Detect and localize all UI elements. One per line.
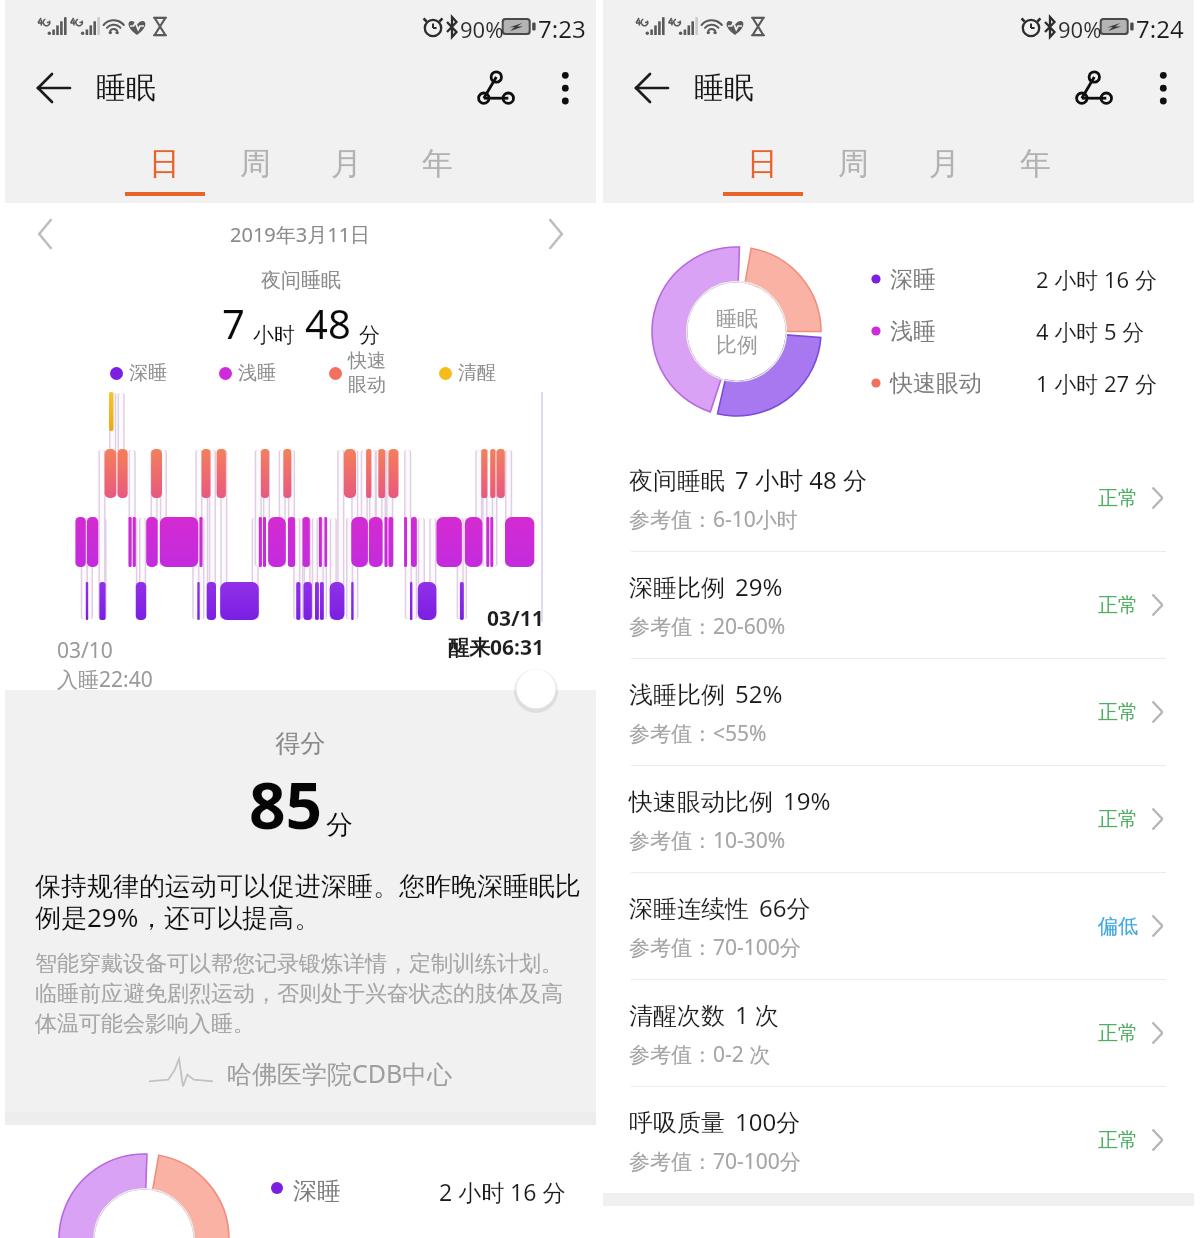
staticText: 03/10	[57, 636, 113, 665]
staticText: 年	[1020, 144, 1051, 183]
staticText: 眼动	[348, 373, 386, 397]
staticText: 100分	[735, 1105, 801, 1138]
staticText: 周	[240, 144, 271, 183]
staticText: 深睡比例	[629, 573, 725, 603]
staticText: 保持规律的运动可以促进深睡。您昨晚深睡眠比例是29%，还可以提高。	[35, 870, 582, 935]
staticText: 清醒	[458, 361, 496, 385]
staticText: 正常	[1098, 1128, 1138, 1153]
staticText: 月	[929, 144, 960, 183]
staticText: 浅睡	[890, 317, 936, 346]
staticText: 4 小时 5 分	[1036, 316, 1145, 346]
button[interactable]: 月	[899, 128, 990, 203]
staticText: 快速	[348, 349, 386, 373]
staticText: 90%	[460, 14, 504, 44]
staticText: 参考值：70-100分	[629, 933, 801, 962]
button[interactable]: 清醒次数	[603, 980, 1194, 1086]
button[interactable]: Share	[1065, 59, 1123, 117]
staticText: 7:24	[1136, 12, 1184, 45]
staticText: 参考值：10-30%	[629, 826, 786, 855]
staticText: 分	[359, 322, 380, 348]
staticText: 深睡	[890, 265, 936, 294]
staticText: 睡眠	[694, 69, 754, 107]
staticText: 参考值：6-10小时	[629, 505, 798, 534]
staticText: 快速眼动比例	[629, 787, 773, 817]
staticText: 月	[331, 144, 362, 183]
staticText: 清醒次数	[629, 1001, 725, 1031]
button[interactable]: 年	[990, 128, 1081, 203]
button[interactable]: Next day	[532, 211, 578, 257]
button[interactable]: 周	[210, 128, 301, 203]
staticText: 分	[326, 808, 353, 842]
staticText: 年	[422, 144, 453, 183]
button[interactable]: More options	[537, 59, 595, 117]
staticText: 参考值：70-100分	[629, 1147, 801, 1176]
staticText: 7:23	[538, 12, 586, 45]
staticText: 正常	[1098, 1021, 1138, 1046]
button[interactable]: 深睡比例	[603, 552, 1194, 658]
staticText: 48	[305, 296, 351, 350]
button[interactable]: 月	[301, 128, 392, 203]
staticText: 醒来06:31	[448, 633, 544, 662]
staticText: 正常	[1098, 486, 1138, 511]
staticText: 正常	[1098, 593, 1138, 618]
staticText: 7	[222, 296, 245, 350]
button[interactable]: 深睡连续性	[603, 873, 1194, 979]
staticText: 52%	[735, 677, 783, 710]
staticText: 参考值：<55%	[629, 719, 767, 748]
staticText: 03/11	[487, 604, 544, 633]
staticText: 周	[838, 144, 869, 183]
staticText: 正常	[1098, 807, 1138, 832]
staticText: 66分	[759, 891, 811, 924]
button[interactable]: Share	[467, 59, 525, 117]
staticText: 日	[149, 144, 180, 183]
staticText: 2019年3月11日	[230, 221, 371, 248]
staticText: 90%	[1058, 14, 1102, 44]
button[interactable]: Back	[629, 63, 679, 113]
staticText: 夜间睡眠	[629, 466, 725, 496]
staticText: 哈佛医学院CDB中心	[227, 1056, 453, 1090]
staticText: 得分	[5, 728, 596, 759]
staticText: 1 小时 27 分	[1036, 368, 1157, 398]
button[interactable]: 夜间睡眠	[603, 445, 1194, 551]
staticText: 深睡	[293, 1176, 341, 1206]
staticText: 呼吸质量	[629, 1108, 725, 1138]
staticText: 日	[747, 144, 778, 183]
staticText: 智能穿戴设备可以帮您记录锻炼详情，定制训练计划。临睡前应避免剧烈运动，否则处于兴…	[35, 950, 584, 1038]
staticText: 正常	[1098, 700, 1138, 725]
staticText: 浅睡	[238, 361, 276, 385]
staticText: 2 小时 16 分	[1036, 264, 1157, 294]
staticText: 睡眠	[716, 306, 758, 332]
button[interactable]: Previous day	[23, 211, 69, 257]
staticText: 1 次	[735, 998, 779, 1031]
staticText: 小时	[253, 322, 295, 348]
staticText: 2 小时 16 分	[439, 1176, 566, 1207]
button[interactable]: 日	[119, 128, 210, 203]
staticText: 85	[249, 761, 323, 848]
button[interactable]: 年	[392, 128, 483, 203]
staticText: 入睡22:40	[57, 665, 153, 690]
button[interactable]: 呼吸质量	[603, 1087, 1194, 1193]
button[interactable]: 浅睡比例	[603, 659, 1194, 765]
staticText: 夜间睡眠	[261, 268, 341, 293]
staticText: 比例	[716, 332, 758, 358]
staticText: 参考值：20-60%	[629, 612, 786, 641]
staticText: 参考值：0-2 次	[629, 1040, 771, 1069]
staticText: 快速眼动	[890, 369, 982, 398]
button[interactable]: 周	[808, 128, 899, 203]
staticText: 深睡连续性	[629, 894, 749, 924]
staticText: 19%	[783, 784, 831, 817]
button[interactable]: Back	[31, 63, 81, 113]
staticText: 7 小时 48 分	[735, 463, 867, 496]
staticText: 睡眠	[96, 69, 156, 107]
button[interactable]: 日	[717, 128, 808, 203]
staticText: 深睡	[129, 361, 167, 385]
button[interactable]: More options	[1135, 59, 1193, 117]
button[interactable]: 快速眼动比例	[603, 766, 1194, 872]
staticText: 偏低	[1098, 914, 1138, 939]
staticText: 浅睡比例	[629, 680, 725, 710]
staticText: 29%	[735, 570, 783, 603]
